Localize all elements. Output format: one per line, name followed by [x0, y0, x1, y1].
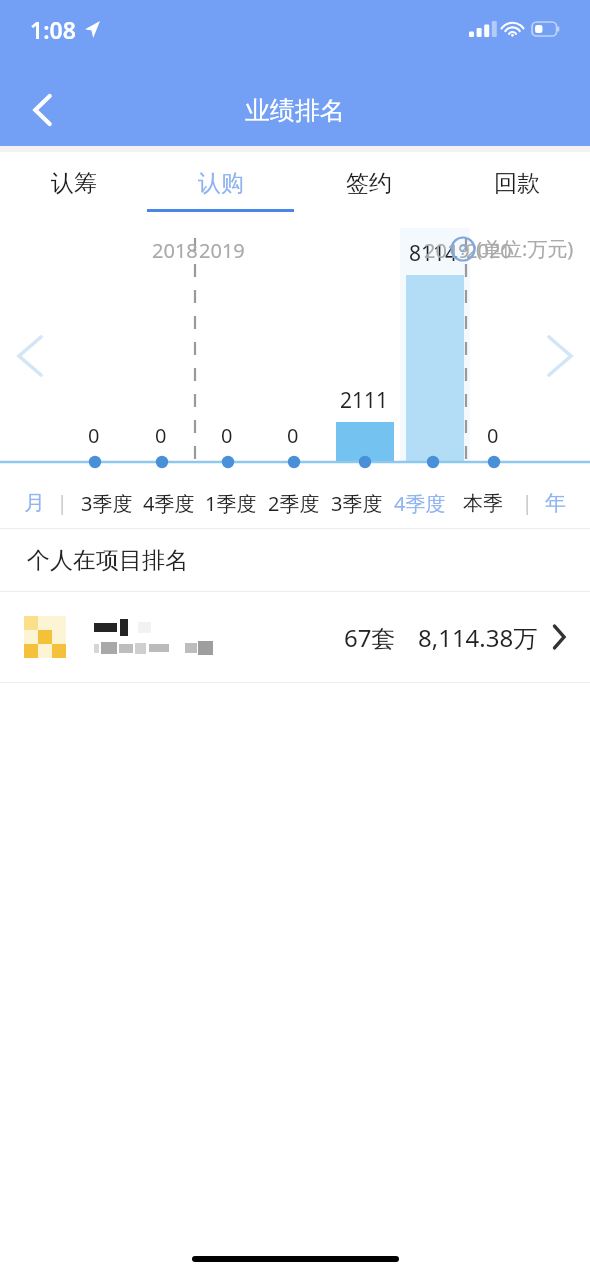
button[interactable]: 3季度	[325, 490, 388, 517]
staticText: (单位:万元)	[476, 235, 574, 262]
staticText: 月	[24, 490, 45, 516]
staticText: 67套	[344, 621, 396, 654]
button[interactable]: 月	[20, 490, 49, 516]
button[interactable]: 67套	[0, 592, 590, 682]
staticText: 回款	[494, 169, 540, 198]
staticText: 2季度	[268, 490, 320, 517]
staticText: 认购	[198, 169, 244, 198]
staticText: 年	[545, 490, 566, 516]
staticText: 3季度	[331, 490, 383, 517]
staticText: 个人在项目排名	[27, 546, 188, 575]
button[interactable]: Unit info	[450, 236, 476, 262]
button[interactable]: 年	[541, 490, 570, 516]
staticText: 本季	[463, 491, 503, 516]
staticText: ?	[460, 239, 467, 259]
staticText: 2018	[152, 237, 198, 264]
staticText: 2019	[199, 237, 245, 264]
staticText: 0	[221, 422, 233, 449]
staticText: 1:08	[30, 14, 76, 45]
button[interactable]: 1季度	[200, 490, 262, 517]
staticText: 1季度	[205, 490, 257, 517]
staticText: 4季度	[143, 490, 195, 517]
staticText: 4季度	[394, 490, 446, 517]
staticText: |	[522, 490, 533, 516]
button[interactable]: 2季度	[262, 490, 325, 517]
button[interactable]: 4季度	[138, 490, 200, 517]
staticText: 8,114.38万	[418, 621, 538, 654]
staticText: 业绩排名	[245, 95, 345, 126]
button[interactable]: 4季度	[388, 490, 451, 517]
staticText: 0	[487, 422, 499, 449]
staticText: 0	[287, 422, 299, 449]
button[interactable]: 回款	[442, 152, 590, 228]
staticText: 2111	[340, 386, 389, 415]
staticText: 2020	[466, 237, 512, 264]
staticText: 8114	[409, 239, 458, 268]
staticText: 3季度	[81, 490, 133, 517]
staticText: 2019	[424, 237, 470, 264]
button[interactable]: 3季度	[76, 490, 138, 517]
button[interactable]: 本季	[451, 491, 514, 516]
staticText: |	[57, 490, 68, 516]
staticText: 签约	[346, 169, 392, 198]
button[interactable]: 签约	[294, 152, 442, 228]
button[interactable]: 认购	[147, 152, 294, 228]
staticText: 0	[155, 422, 167, 449]
staticText: 0	[88, 422, 100, 449]
button[interactable]: Back	[14, 82, 70, 138]
button[interactable]: 认筹	[0, 152, 147, 228]
staticText: 认筹	[51, 169, 97, 198]
